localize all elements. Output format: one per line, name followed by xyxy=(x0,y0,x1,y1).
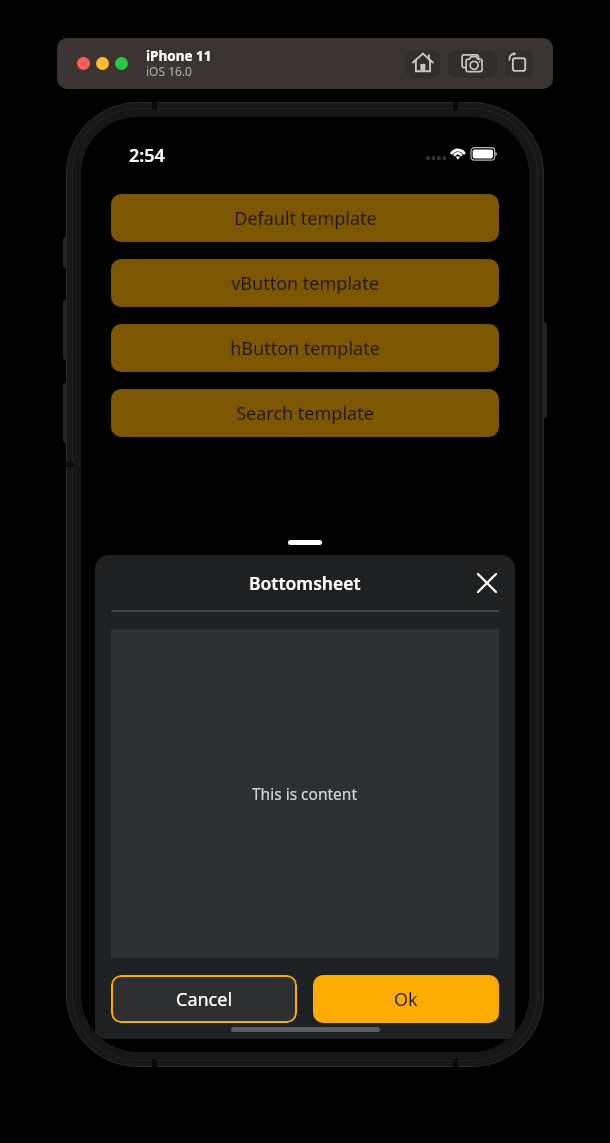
button[interactable]: Rotate xyxy=(505,50,533,78)
staticText: Search template xyxy=(236,401,374,426)
staticText: 2:54 xyxy=(129,143,165,168)
button[interactable]: Close xyxy=(471,567,503,599)
button[interactable]: vButton template xyxy=(111,259,499,307)
staticText: Cancel xyxy=(176,987,233,1012)
staticText: This is content xyxy=(252,783,358,804)
button[interactable]: Screenshot xyxy=(448,50,497,78)
staticText: iPhone 11 xyxy=(146,47,212,65)
staticText: hButton template xyxy=(230,336,380,361)
button[interactable]: Home xyxy=(406,50,440,78)
button[interactable]: Ok xyxy=(313,975,499,1023)
staticText: Bottomsheet xyxy=(249,571,361,595)
button[interactable]: Maximize xyxy=(115,57,128,70)
staticText: iOS 16.0 xyxy=(146,63,192,79)
button[interactable]: Minimize xyxy=(96,57,109,70)
staticText: Default template xyxy=(234,206,377,231)
staticText: Ok xyxy=(394,987,418,1012)
button[interactable]: hButton template xyxy=(111,324,499,372)
button[interactable]: Default template xyxy=(111,194,499,242)
staticText: vButton template xyxy=(231,271,379,296)
button[interactable]: Cancel xyxy=(111,975,297,1023)
button[interactable]: Close xyxy=(77,57,90,70)
button[interactable]: Search template xyxy=(111,389,499,437)
